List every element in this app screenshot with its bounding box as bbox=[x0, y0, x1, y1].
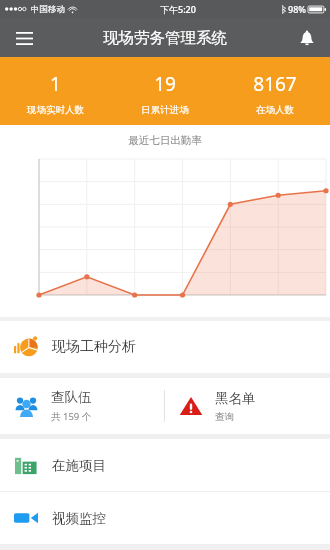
button[interactable]: 1 bbox=[0, 67, 110, 116]
staticText: 19 bbox=[154, 71, 176, 97]
staticText: 下午5:20 bbox=[160, 3, 196, 15]
staticText: 查队伍 bbox=[51, 389, 92, 406]
button[interactable]: 查队伍 bbox=[0, 378, 164, 434]
staticText: 黑名单 bbox=[215, 390, 256, 407]
staticText: 98% bbox=[288, 3, 306, 15]
staticText: 现场工种分析 bbox=[52, 338, 136, 356]
staticText: 查询 bbox=[215, 411, 234, 423]
staticText: 共 159 个 bbox=[51, 410, 92, 423]
staticText: 视频监控 bbox=[52, 510, 106, 527]
button[interactable]: 在施项目 bbox=[0, 439, 330, 491]
button[interactable]: 19 bbox=[110, 67, 220, 116]
staticText: 现场劳务管理系统 bbox=[103, 28, 227, 48]
staticText: 1 bbox=[50, 71, 61, 97]
staticText: 日累计进场 bbox=[141, 104, 189, 116]
staticText: 最近七日出勤率 bbox=[0, 134, 330, 147]
button[interactable]: 黑名单 bbox=[165, 378, 330, 434]
button[interactable]: Menu bbox=[9, 23, 39, 53]
staticText: 8167 bbox=[253, 71, 297, 97]
staticText: 在场人数 bbox=[256, 104, 294, 116]
button[interactable]: 现场工种分析 bbox=[0, 321, 330, 373]
staticText: 现场实时人数 bbox=[27, 104, 84, 116]
button[interactable]: 8167 bbox=[220, 67, 330, 116]
button[interactable]: 视频监控 bbox=[0, 492, 330, 544]
staticText: 在施项目 bbox=[52, 457, 106, 474]
staticText: 中国移动 bbox=[31, 4, 65, 15]
button[interactable]: Notifications bbox=[293, 24, 321, 52]
